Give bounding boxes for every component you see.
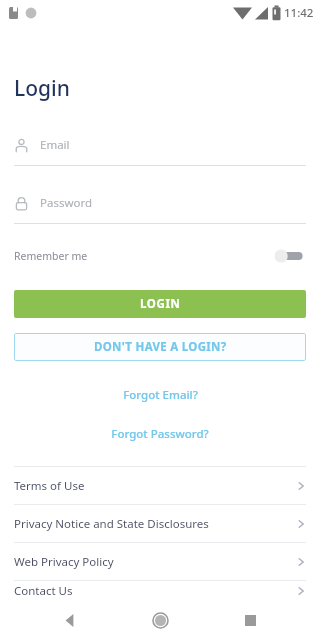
button[interactable]: Terms of Use [0,467,320,504]
staticText: LOGIN [140,296,181,312]
staticText: Login [14,74,70,103]
button[interactable]: Recent apps [230,600,270,640]
button[interactable]: Privacy Notice and State Disclosures [0,505,320,542]
button[interactable]: Remember me toggle [272,246,306,266]
staticText: 11:42 [284,5,314,21]
staticText: Privacy Notice and State Disclosures [14,516,296,532]
button[interactable]: Web Privacy Policy [0,543,320,580]
staticText: Email [40,137,70,153]
staticText: Remember me [14,249,272,263]
button[interactable]: Email [14,133,306,166]
staticText: Terms of Use [14,478,296,494]
button[interactable]: Forgot Password? [0,423,320,445]
staticText: DON'T HAVE A LOGIN? [94,339,227,355]
staticText: Web Privacy Policy [14,554,296,570]
button[interactable]: Forgot Email? [0,384,320,406]
button[interactable]: Back [50,600,90,640]
button[interactable]: Contact Us [0,581,320,600]
staticText: Contact Us [14,583,296,599]
button[interactable]: LOGIN [14,290,306,318]
button[interactable]: DON'T HAVE A LOGIN? [14,333,306,361]
staticText: Forgot Password? [111,426,209,442]
staticText: Password [40,195,93,211]
button[interactable]: Home [140,600,180,640]
staticText: Forgot Email? [123,387,198,403]
button[interactable]: Password [14,191,306,224]
